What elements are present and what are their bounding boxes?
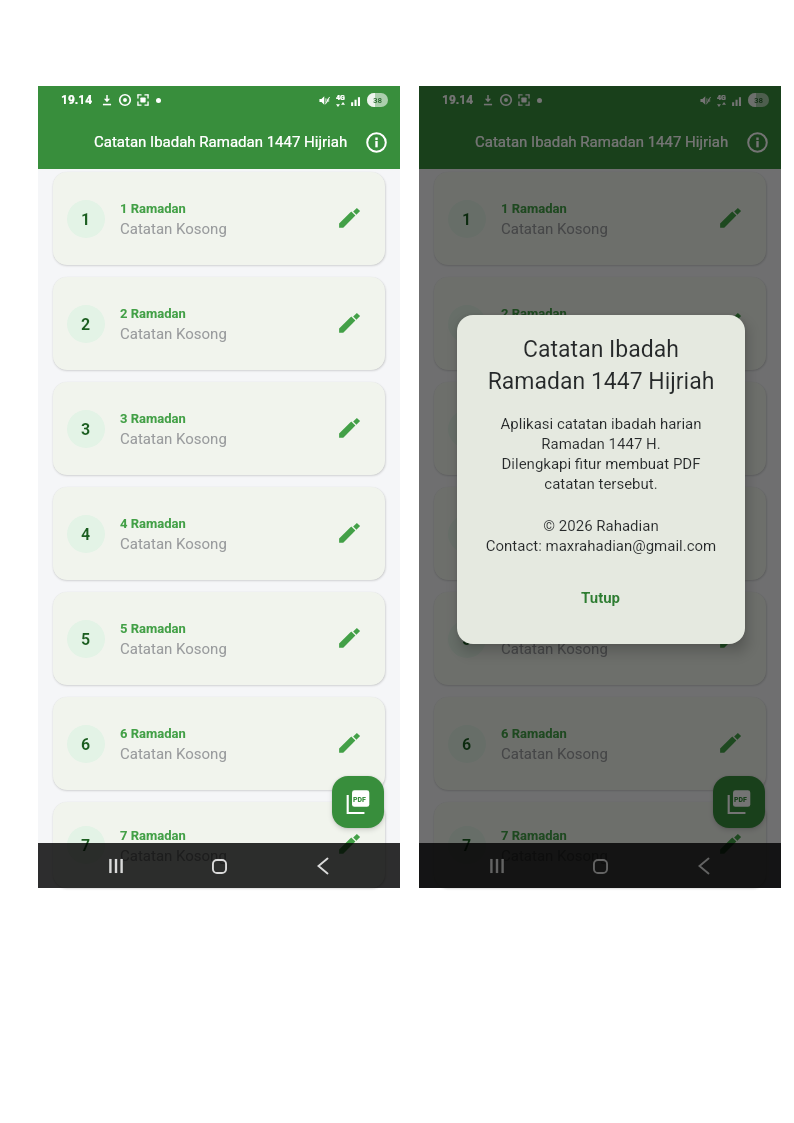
button[interactable]: 6 bbox=[53, 697, 385, 790]
button[interactable]: Buat PDF bbox=[332, 776, 384, 828]
staticText: 5 bbox=[462, 630, 472, 649]
button[interactable]: Back bbox=[684, 846, 724, 886]
staticText: 6 bbox=[81, 735, 91, 754]
staticText: Catatan Kosong bbox=[501, 640, 608, 658]
staticText: Catatan Kosong bbox=[501, 430, 608, 448]
button[interactable]: 5 bbox=[53, 592, 385, 685]
staticText: 4 bbox=[81, 525, 91, 544]
staticText: 19.14 bbox=[61, 93, 93, 107]
button[interactable]: 1 bbox=[53, 172, 385, 265]
button[interactable]: Edit catatan bbox=[333, 828, 365, 860]
staticText: 4 Ramadan bbox=[120, 516, 186, 531]
staticText: 4G bbox=[336, 94, 345, 102]
staticText: Catatan Ibadah Ramadan 1447 Hijriah bbox=[94, 133, 348, 151]
button[interactable]: 1 bbox=[434, 172, 766, 265]
button[interactable]: Home bbox=[199, 846, 239, 886]
button[interactable]: Edit catatan bbox=[714, 727, 746, 759]
staticText: Catatan Kosong bbox=[120, 430, 227, 448]
button[interactable]: Edit catatan bbox=[333, 307, 365, 339]
staticText: 2 Ramadan bbox=[120, 306, 186, 321]
staticText: Catatan Ibadah Ramadan 1447 Hijriah bbox=[457, 336, 745, 395]
button[interactable]: Tentang aplikasi bbox=[361, 127, 391, 157]
button[interactable]: Tentang aplikasi bbox=[742, 127, 772, 157]
button[interactable]: Back bbox=[303, 846, 343, 886]
button[interactable]: 2 bbox=[53, 277, 385, 370]
staticText: 6 Ramadan bbox=[501, 726, 567, 741]
button[interactable]: Edit catatan bbox=[333, 727, 365, 759]
button[interactable]: 4 bbox=[53, 487, 385, 580]
staticText: Catatan Kosong bbox=[120, 745, 227, 763]
staticText: 2 Ramadan bbox=[501, 306, 567, 321]
button[interactable]: Home bbox=[580, 846, 620, 886]
staticText: 5 bbox=[81, 630, 91, 649]
staticText: Tutup bbox=[581, 589, 621, 607]
staticText: Catatan Kosong bbox=[501, 325, 608, 343]
staticText: 4G bbox=[717, 94, 726, 102]
staticText: 5 Ramadan bbox=[120, 621, 186, 636]
button[interactable]: Edit catatan bbox=[714, 828, 746, 860]
staticText: 7 bbox=[462, 836, 472, 855]
button[interactable]: 7 bbox=[434, 802, 766, 888]
staticText: 38 bbox=[754, 96, 764, 105]
staticText: Catatan Kosong bbox=[120, 847, 227, 865]
staticText: Catatan Kosong bbox=[501, 745, 608, 763]
staticText: 1 Ramadan bbox=[120, 201, 186, 216]
staticText: 7 bbox=[81, 836, 91, 855]
button[interactable]: 6 bbox=[434, 697, 766, 790]
staticText: 3 Ramadan bbox=[120, 411, 186, 426]
button[interactable]: Buat PDF bbox=[713, 776, 765, 828]
staticText: 1 Ramadan bbox=[501, 201, 567, 216]
button[interactable]: Edit catatan bbox=[714, 622, 746, 654]
staticText: 19.14 bbox=[442, 93, 474, 107]
staticText: 38 bbox=[373, 96, 383, 105]
button[interactable]: Edit catatan bbox=[714, 517, 746, 549]
staticText: 1 bbox=[462, 210, 472, 229]
staticText: 2 bbox=[462, 315, 472, 334]
button[interactable]: Edit catatan bbox=[333, 517, 365, 549]
button[interactable]: Tutup bbox=[559, 584, 643, 612]
staticText: Catatan Kosong bbox=[501, 220, 608, 238]
staticText: PDF bbox=[353, 796, 366, 804]
button[interactable]: 7 bbox=[53, 802, 385, 888]
button[interactable]: 4 bbox=[434, 487, 766, 580]
staticText: Aplikasi catatan ibadah harian Ramadan 1… bbox=[457, 415, 745, 493]
button[interactable]: Edit catatan bbox=[333, 412, 365, 444]
staticText: Catatan Kosong bbox=[501, 535, 608, 553]
staticText: PDF bbox=[734, 796, 747, 804]
staticText: 3 bbox=[81, 420, 91, 439]
button[interactable]: 2 bbox=[434, 277, 766, 370]
staticText: Catatan Kosong bbox=[120, 535, 227, 553]
staticText: 1 bbox=[81, 210, 91, 229]
button[interactable]: Edit catatan bbox=[333, 622, 365, 654]
button[interactable]: Edit catatan bbox=[714, 307, 746, 339]
staticText: 6 bbox=[462, 735, 472, 754]
staticText: 6 Ramadan bbox=[120, 726, 186, 741]
staticText: 4 Ramadan bbox=[501, 516, 567, 531]
staticText: 2 bbox=[81, 315, 91, 334]
button[interactable]: Edit catatan bbox=[714, 202, 746, 234]
staticText: Catatan Ibadah Ramadan 1447 Hijriah bbox=[475, 133, 729, 151]
button[interactable]: Recents bbox=[477, 846, 517, 886]
staticText: Catatan Kosong bbox=[501, 847, 608, 865]
staticText: Catatan Kosong bbox=[120, 640, 227, 658]
button[interactable]: Recents bbox=[96, 846, 136, 886]
button[interactable]: Edit catatan bbox=[333, 202, 365, 234]
staticText: © 2026 Rahadian Contact: maxrahadian@gma… bbox=[457, 517, 745, 555]
button[interactable]: Edit catatan bbox=[714, 412, 746, 444]
button[interactable]: 5 bbox=[434, 592, 766, 685]
staticText: Catatan Kosong bbox=[120, 325, 227, 343]
button[interactable]: 3 bbox=[434, 382, 766, 475]
staticText: Catatan Kosong bbox=[120, 220, 227, 238]
staticText: 3 Ramadan bbox=[501, 411, 567, 426]
button[interactable]: 3 bbox=[53, 382, 385, 475]
staticText: 7 Ramadan bbox=[120, 828, 186, 843]
staticText: 7 Ramadan bbox=[501, 828, 567, 843]
